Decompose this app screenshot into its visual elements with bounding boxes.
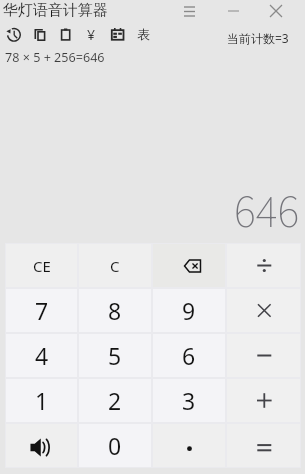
- button[interactable]: C: [79, 244, 151, 287]
- button[interactable]: Multiply: [227, 289, 300, 332]
- button[interactable]: Minimize: [211, 0, 255, 22]
- button[interactable]: Divide: [227, 244, 300, 287]
- staticText: 8: [108, 295, 122, 326]
- button[interactable]: Calendar: [104, 25, 130, 43]
- button[interactable]: Currency: [78, 25, 104, 43]
- staticText: 4: [35, 340, 49, 371]
- button[interactable]: 8: [79, 289, 151, 332]
- button[interactable]: Minus: [227, 334, 300, 377]
- button[interactable]: 4: [6, 334, 77, 377]
- button[interactable]: 1: [6, 379, 77, 422]
- staticText: C: [110, 256, 120, 276]
- button[interactable]: Backspace: [153, 244, 225, 287]
- button[interactable]: Speak result: [6, 424, 77, 467]
- staticText: 78 × 5 + 256=646: [5, 49, 105, 66]
- button[interactable]: 3: [153, 379, 225, 422]
- button[interactable]: Close: [254, 0, 298, 22]
- staticText: 6: [182, 340, 196, 371]
- button[interactable]: Plus: [227, 379, 300, 422]
- staticText: 0: [108, 430, 122, 461]
- button[interactable]: Menu: [167, 0, 211, 22]
- button[interactable]: Equals: [227, 424, 300, 467]
- staticText: CE: [33, 256, 51, 276]
- staticText: 646: [234, 180, 300, 246]
- button[interactable]: 5: [79, 334, 151, 377]
- button[interactable]: CE: [6, 244, 77, 287]
- staticText: 7: [35, 295, 49, 326]
- staticText: 表: [137, 26, 150, 42]
- staticText: 2: [108, 385, 122, 416]
- button[interactable]: 9: [153, 289, 225, 332]
- staticText: ¥: [87, 25, 96, 43]
- staticText: 当前计数=3: [227, 30, 289, 46]
- staticText: 3: [182, 385, 196, 416]
- button[interactable]: Paste: [52, 25, 78, 43]
- button[interactable]: Decimal point: [153, 424, 225, 467]
- button[interactable]: 7: [6, 289, 77, 332]
- button[interactable]: 0: [79, 424, 151, 467]
- button[interactable]: 2: [79, 379, 151, 422]
- button[interactable]: 6: [153, 334, 225, 377]
- button[interactable]: History: [0, 25, 26, 43]
- staticText: 华灯语音计算器: [3, 1, 108, 20]
- staticText: 1: [35, 385, 49, 416]
- staticText: 5: [108, 340, 122, 371]
- staticText: 9: [182, 295, 196, 326]
- button[interactable]: Table: [130, 25, 156, 43]
- button[interactable]: Copy: [26, 25, 52, 43]
